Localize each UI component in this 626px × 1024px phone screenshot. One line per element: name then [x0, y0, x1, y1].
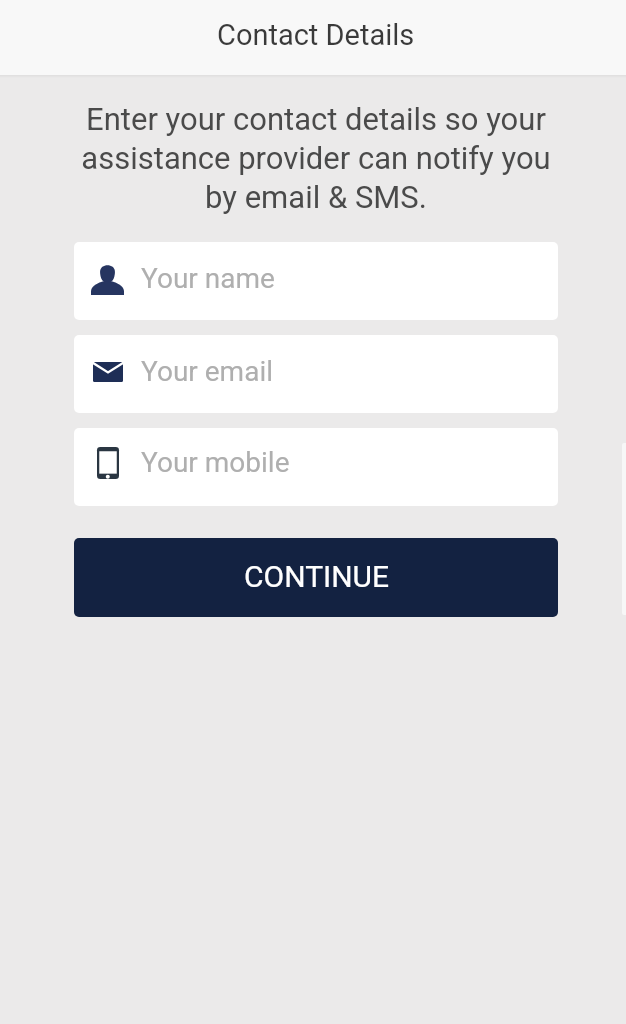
staticText: Your mobile: [141, 446, 290, 479]
staticText: Your name: [141, 262, 275, 295]
button[interactable]: Name input: [74, 242, 558, 320]
staticText: CONTINUE: [244, 559, 390, 594]
button[interactable]: Mobile input: [74, 428, 558, 506]
button[interactable]: Email input: [74, 335, 558, 413]
button[interactable]: CONTINUE: [74, 538, 558, 617]
staticText: Enter your contact details so your assis…: [74, 101, 558, 215]
staticText: Your email: [141, 355, 274, 388]
staticText: Contact Details: [217, 18, 415, 52]
